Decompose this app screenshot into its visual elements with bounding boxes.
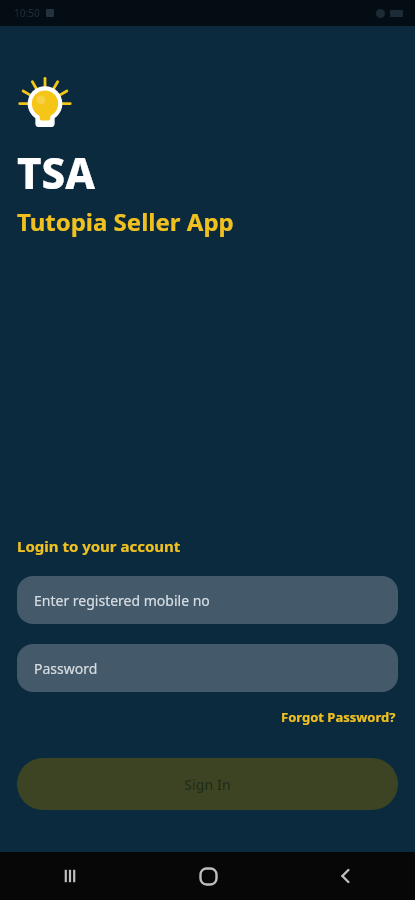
staticText: Tutopia Seller App xyxy=(17,205,234,238)
other: Tutopia logo xyxy=(17,72,73,128)
staticText: Sign In xyxy=(184,775,231,794)
staticText: Forgot Password? xyxy=(281,708,396,726)
staticText: Enter registered mobile no xyxy=(34,591,210,610)
button[interactable]: Recent apps xyxy=(0,852,139,900)
button[interactable]: Sign In xyxy=(17,758,398,810)
staticText: TSA xyxy=(17,144,95,201)
button[interactable]: Back xyxy=(277,852,415,900)
staticText: Password xyxy=(34,659,98,678)
staticText: Login to your account xyxy=(17,536,181,556)
button[interactable]: Enter registered mobile no xyxy=(17,576,398,624)
staticText: 10:50 xyxy=(14,6,40,20)
button[interactable]: Home xyxy=(139,852,277,900)
button[interactable]: Password xyxy=(17,644,398,692)
button[interactable]: Forgot Password? xyxy=(279,706,398,728)
